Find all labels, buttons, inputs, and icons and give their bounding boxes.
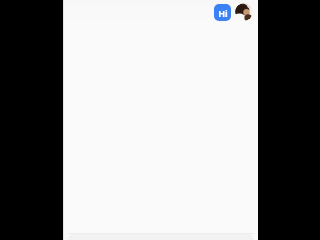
button[interactable]: Hi <box>214 4 231 21</box>
button[interactable] <box>63 231 258 240</box>
staticText: Hi <box>218 7 228 19</box>
button[interactable]: Profile <box>235 3 253 21</box>
